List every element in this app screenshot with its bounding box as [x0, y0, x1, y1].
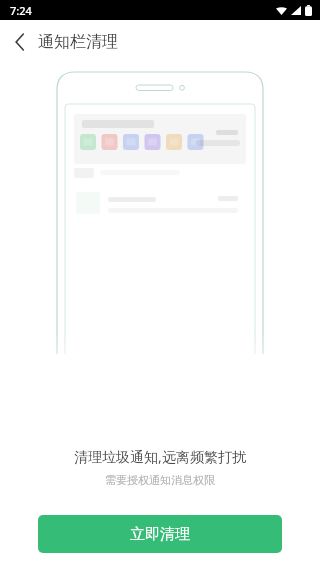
staticText: 立即清理 [130, 525, 190, 544]
staticText: 通知栏清理 [38, 32, 118, 52]
staticText: 清理垃圾通知,远离频繁打扰 [74, 447, 246, 466]
button[interactable]: 立即清理 [38, 515, 282, 553]
button[interactable]: Back [0, 22, 40, 62]
staticText: 7:24 [10, 3, 32, 18]
staticText: 需要授权通知消息权限 [105, 473, 215, 487]
